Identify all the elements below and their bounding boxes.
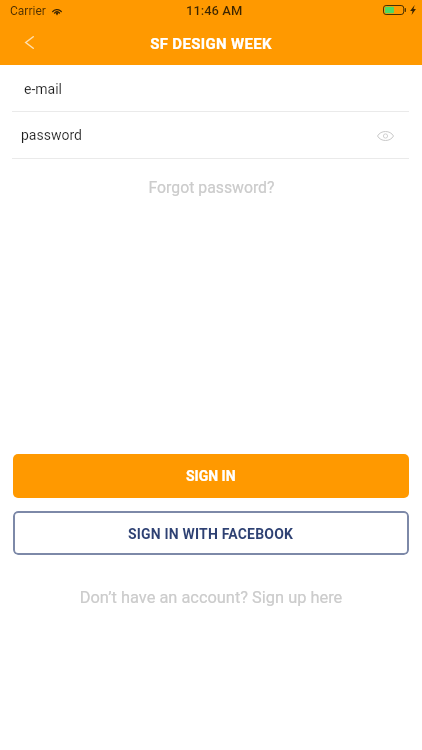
staticText: Don’t have an account? Sign up here <box>70 588 352 607</box>
staticText: password <box>21 127 82 143</box>
staticText: SIGN IN <box>186 468 236 484</box>
staticText: Carrier <box>10 4 46 18</box>
button[interactable]: Show password <box>370 120 401 151</box>
button[interactable]: e-mail <box>0 65 422 112</box>
button[interactable]: Back <box>11 24 47 60</box>
button[interactable]: password <box>0 112 422 158</box>
staticText: e-mail <box>24 81 62 97</box>
staticText: 11:46 AM <box>186 3 243 18</box>
button[interactable]: SIGN IN WITH FACEBOOK <box>13 511 409 555</box>
button[interactable]: SIGN IN <box>13 454 409 498</box>
staticText: SIGN IN WITH FACEBOOK <box>128 526 294 542</box>
staticText: Forgot password? <box>140 178 283 197</box>
button[interactable]: Forgot password? <box>140 176 283 198</box>
staticText: SF DESIGN WEEK <box>0 35 422 53</box>
button[interactable]: Don’t have an account? Sign up here <box>70 587 352 608</box>
